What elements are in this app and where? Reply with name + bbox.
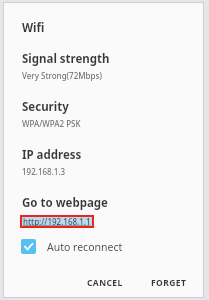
staticText: FORGET bbox=[151, 277, 187, 289]
staticText: IP address bbox=[22, 147, 82, 163]
button[interactable]: Auto reconnect bbox=[21, 237, 131, 256]
staticText: CANCEL bbox=[87, 277, 123, 289]
button[interactable]: FORGET bbox=[145, 272, 193, 294]
staticText: Signal strength bbox=[22, 51, 110, 67]
staticText: WPA/WPA2 PSK bbox=[22, 118, 81, 129]
staticText: Go to webpage bbox=[22, 195, 108, 211]
staticText: Wifi bbox=[22, 20, 45, 36]
staticText: Auto reconnect bbox=[47, 240, 123, 254]
staticText: 192.168.1.3 bbox=[22, 166, 66, 177]
button[interactable]: http://192.168.1.1 bbox=[22, 216, 92, 227]
staticText: http://192.168.1.1 bbox=[23, 216, 91, 227]
button[interactable]: CANCEL bbox=[81, 272, 129, 294]
staticText: Security bbox=[22, 99, 69, 115]
staticText: Very Strong(72Mbps) bbox=[22, 70, 102, 81]
